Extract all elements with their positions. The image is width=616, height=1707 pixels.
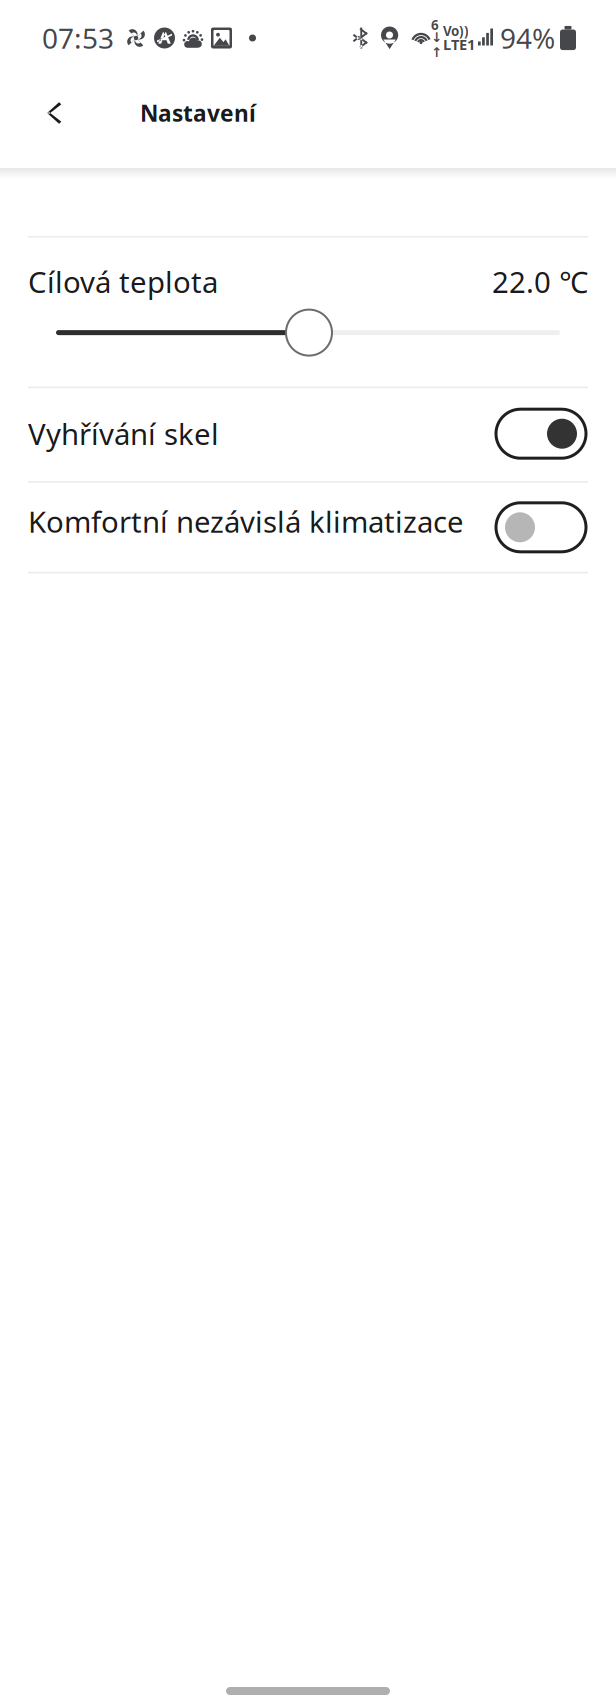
staticText: LTE1 [443, 35, 475, 54]
staticText: 94% [500, 19, 555, 57]
staticText: Cílová teplota [28, 262, 218, 301]
staticText: Vyhřívání skel [28, 414, 219, 453]
staticText: Komfortní nezávislá klimatizace [28, 502, 464, 541]
staticText: 6 [431, 16, 439, 34]
button[interactable]: Vyhřívání skel [28, 388, 588, 481]
staticText: 07:53 [42, 19, 114, 57]
staticText: ↓↑ [431, 30, 442, 60]
staticText: Vo)) [443, 22, 469, 40]
staticText: Nastavení [140, 98, 256, 128]
button[interactable]: Komfortní nezávislá klimatizace [28, 483, 588, 572]
staticText: 22.0 ℃ [492, 262, 588, 301]
button[interactable]: Zpět [24, 85, 84, 141]
